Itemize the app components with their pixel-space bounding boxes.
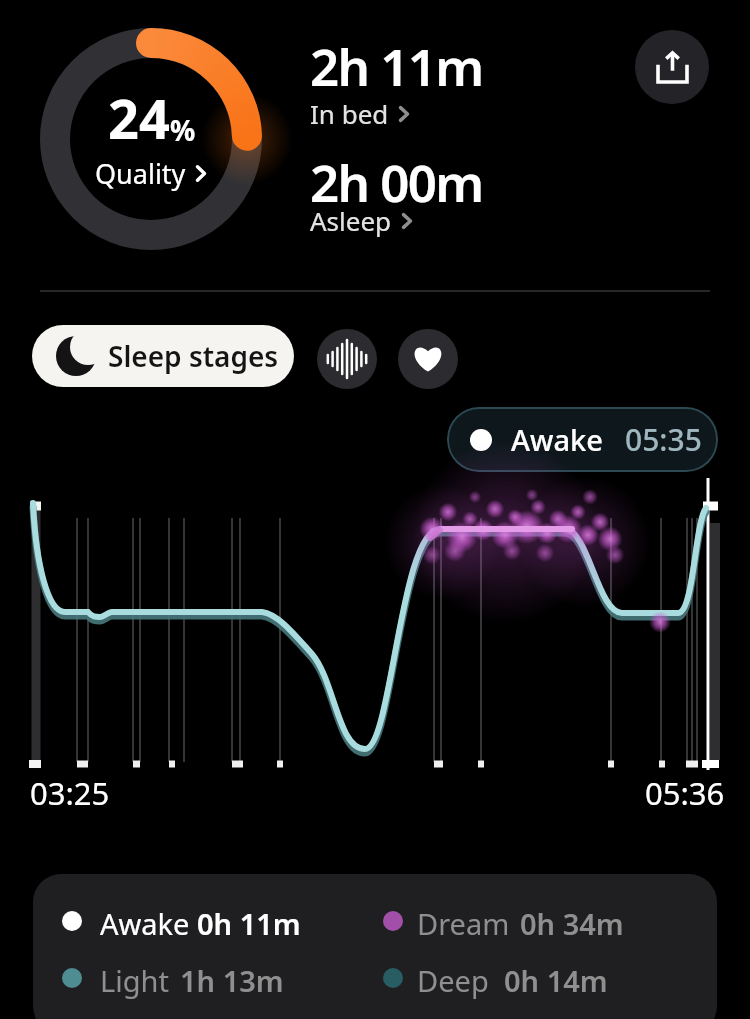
staticText: Dream (417, 904, 510, 943)
staticText: Awake (511, 420, 603, 459)
staticText: 0h 14m (504, 961, 608, 1000)
button[interactable]: Awake (447, 407, 718, 472)
staticText: 05:35 (625, 419, 702, 460)
staticText: In bed (310, 96, 389, 131)
button[interactable]: Asleep (310, 203, 414, 238)
staticText: Deep (417, 961, 489, 1000)
staticText: Quality (95, 155, 186, 192)
button[interactable] (398, 329, 458, 389)
staticText: Light (100, 961, 169, 1000)
staticText: 1h 13m (180, 961, 284, 1000)
button[interactable]: In bed (310, 96, 411, 131)
staticText: 05:36 (645, 772, 725, 814)
staticText: Asleep (310, 203, 392, 238)
button[interactable] (317, 329, 377, 389)
button[interactable]: Quality (95, 155, 208, 192)
staticText: % (170, 111, 196, 149)
button[interactable]: Sleep stages (32, 325, 294, 387)
staticText: Sleep stages (108, 337, 279, 375)
staticText: 2h 00m (310, 147, 483, 216)
staticText: 0h 11m (197, 904, 301, 943)
staticText: 24 (108, 81, 170, 155)
button[interactable] (635, 30, 709, 104)
staticText: 0h 34m (520, 904, 624, 943)
staticText: 03:25 (30, 772, 110, 814)
staticText: Awake (100, 904, 190, 943)
staticText: 2h 11m (310, 31, 483, 100)
